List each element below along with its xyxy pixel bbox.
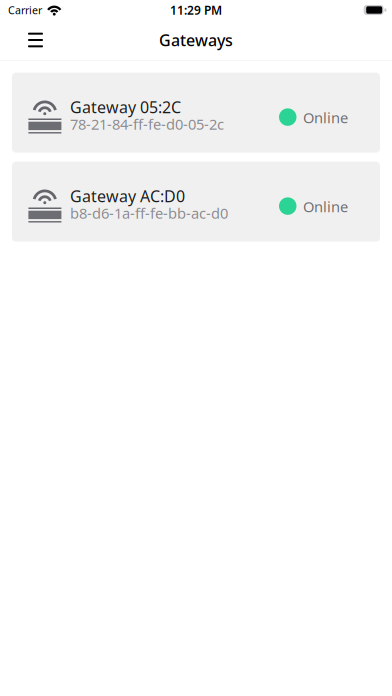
staticText: Gateway AC:D0 xyxy=(70,185,185,207)
staticText: Carrier xyxy=(8,3,42,17)
button[interactable]: Gateway 05:2C xyxy=(12,73,380,153)
staticText: Online xyxy=(303,197,348,216)
staticText: 11:29 PM xyxy=(170,2,222,18)
button[interactable]: Menu xyxy=(13,20,57,60)
staticText: 78-21-84-ff-fe-d0-05-2c xyxy=(70,114,224,134)
button[interactable]: Gateway AC:D0 xyxy=(12,162,380,242)
staticText: b8-d6-1a-ff-fe-bb-ac-d0 xyxy=(70,203,228,223)
staticText: Online xyxy=(303,108,348,127)
staticText: Gateways xyxy=(159,29,233,51)
staticText: Gateway 05:2C xyxy=(70,96,181,118)
